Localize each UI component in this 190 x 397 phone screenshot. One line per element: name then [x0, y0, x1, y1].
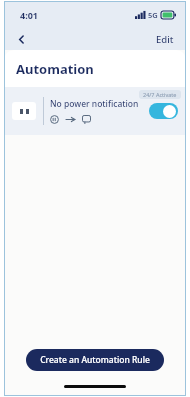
button[interactable]: 24/7 Activate [4, 87, 186, 135]
staticText: 5G [148, 10, 158, 20]
staticText: No power notification [50, 98, 139, 110]
button[interactable]: Edit [144, 30, 186, 49]
button[interactable]: Toggle automation [149, 103, 178, 119]
button[interactable]: Back [10, 28, 32, 50]
button[interactable]: Create an Automation Rule [26, 349, 164, 371]
staticText: Automation [16, 60, 94, 78]
staticText: Create an Automation Rule [40, 354, 150, 366]
staticText: Edit [156, 33, 174, 46]
staticText: 24/7 Activate [143, 91, 177, 98]
staticText: 4:01 [20, 9, 38, 21]
